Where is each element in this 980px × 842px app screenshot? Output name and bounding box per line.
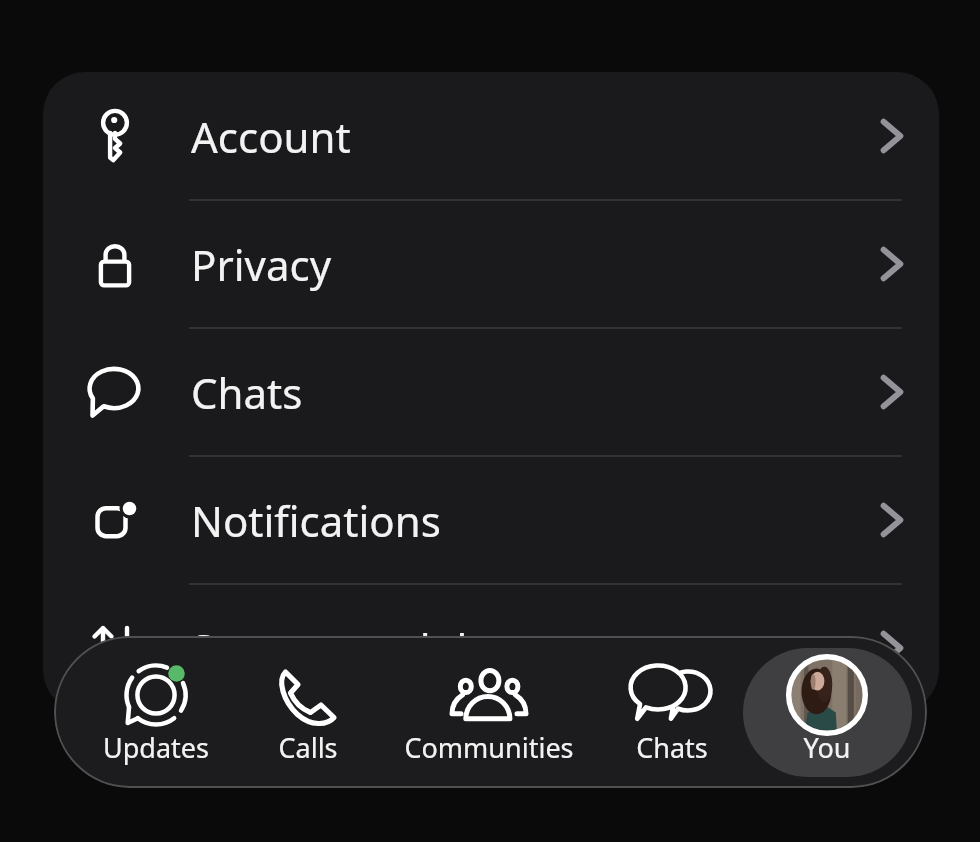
- other: Calls: [276, 663, 340, 727]
- button[interactable]: Storage and data: [43, 584, 939, 712]
- button[interactable]: Account: [43, 72, 939, 200]
- button[interactable]: Calls: [217, 640, 399, 784]
- staticText: Privacy: [191, 236, 332, 293]
- staticText: Chats: [191, 364, 303, 421]
- button[interactable]: Communities: [398, 640, 580, 784]
- other: Communities: [445, 651, 533, 739]
- button[interactable]: Updates: [65, 640, 247, 784]
- other: You: [783, 651, 871, 739]
- button[interactable]: Privacy: [43, 200, 939, 328]
- other: Updates: [123, 662, 189, 728]
- button[interactable]: Chats: [581, 640, 763, 784]
- staticText: Storage and data: [191, 620, 530, 677]
- staticText: Chats: [581, 729, 763, 766]
- button[interactable]: You: [736, 640, 918, 784]
- button[interactable]: Notifications: [43, 456, 939, 584]
- button[interactable]: Chats: [43, 328, 939, 456]
- staticText: Updates: [65, 729, 247, 766]
- staticText: Calls: [217, 729, 399, 766]
- staticText: Notifications: [191, 492, 441, 549]
- staticText: Communities: [398, 729, 580, 766]
- other: Chats: [628, 651, 716, 739]
- staticText: Account: [191, 108, 351, 165]
- staticText: You: [736, 729, 918, 766]
